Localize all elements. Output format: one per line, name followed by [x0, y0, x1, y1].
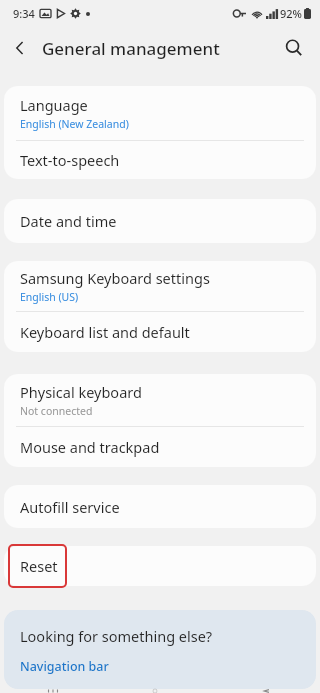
button[interactable]: Recents — [0, 689, 106, 693]
button[interactable]: Back — [0, 28, 40, 68]
staticText: Not connected — [20, 404, 93, 418]
button[interactable]: Autofill service — [4, 485, 316, 528]
staticText: Autofill service — [20, 497, 120, 517]
staticText: Samsung Keyboard settings — [20, 268, 210, 288]
staticText: Looking for something else? — [20, 626, 213, 646]
staticText: Date and time — [20, 211, 117, 231]
staticText: 92% — [280, 6, 302, 21]
button[interactable]: Home — [106, 689, 213, 693]
button[interactable]: Search — [274, 28, 314, 68]
staticText: English (New Zealand) — [20, 117, 129, 131]
staticText: Navigation bar — [20, 658, 109, 675]
button[interactable]: Back — [213, 689, 320, 693]
staticText: General management — [42, 37, 220, 60]
button[interactable]: Mouse and trackpad — [4, 427, 316, 467]
staticText: English (US) — [20, 290, 79, 304]
staticText: Language — [20, 95, 88, 115]
button[interactable]: Physical keyboard — [4, 374, 316, 426]
button[interactable]: Reset — [4, 546, 316, 586]
button[interactable]: Language — [4, 86, 316, 140]
button[interactable]: Keyboard list and default — [4, 312, 316, 352]
button[interactable]: Date and time — [4, 199, 316, 243]
staticText: Text-to-speech — [20, 150, 120, 170]
staticText: Reset — [20, 556, 58, 576]
staticText: 9:34 — [13, 6, 35, 21]
staticText: Physical keyboard — [20, 382, 142, 402]
button[interactable]: Navigation bar — [20, 658, 109, 675]
staticText: Mouse and trackpad — [20, 437, 160, 457]
staticText: Keyboard list and default — [20, 322, 190, 342]
button[interactable]: Samsung Keyboard settings — [4, 261, 316, 311]
button[interactable]: Text-to-speech — [4, 141, 316, 179]
